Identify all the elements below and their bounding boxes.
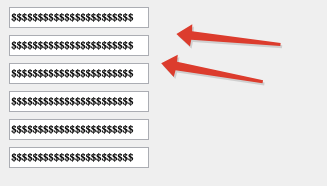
staticText: $$$$$$$$$$$$$$$$$$$$$$$	[11, 38, 133, 52]
button[interactable]: $$$$$$$$$$$$$$$$$$$$$$$	[9, 7, 149, 28]
staticText: $$$$$$$$$$$$$$$$$$$$$$$	[11, 122, 133, 136]
staticText: $$$$$$$$$$$$$$$$$$$$$$$	[11, 122, 133, 136]
staticText: $$$$$$$$$$$$$$$$$$$$$$$	[11, 66, 133, 80]
button[interactable]: $$$$$$$$$$$$$$$$$$$$$$$	[9, 147, 149, 168]
staticText: $$$$$$$$$$$$$$$$$$$$$$$	[11, 10, 133, 24]
other: Annotation arrows	[0, 0, 327, 186]
staticText: $$$$$$$$$$$$$$$$$$$$$$$	[11, 150, 133, 164]
staticText: $$$$$$$$$$$$$$$$$$$$$$$	[11, 38, 133, 52]
staticText: $$$$$$$$$$$$$$$$$$$$$$$	[11, 150, 133, 164]
button[interactable]: $$$$$$$$$$$$$$$$$$$$$$$	[9, 35, 149, 56]
staticText: $$$$$$$$$$$$$$$$$$$$$$$	[11, 10, 133, 24]
staticText: $$$$$$$$$$$$$$$$$$$$$$$	[11, 94, 133, 108]
button[interactable]: $$$$$$$$$$$$$$$$$$$$$$$	[9, 91, 149, 112]
staticText: $$$$$$$$$$$$$$$$$$$$$$$	[11, 66, 133, 80]
button[interactable]: $$$$$$$$$$$$$$$$$$$$$$$	[9, 63, 149, 84]
button[interactable]: $$$$$$$$$$$$$$$$$$$$$$$	[9, 119, 149, 140]
staticText: $$$$$$$$$$$$$$$$$$$$$$$	[11, 94, 133, 108]
